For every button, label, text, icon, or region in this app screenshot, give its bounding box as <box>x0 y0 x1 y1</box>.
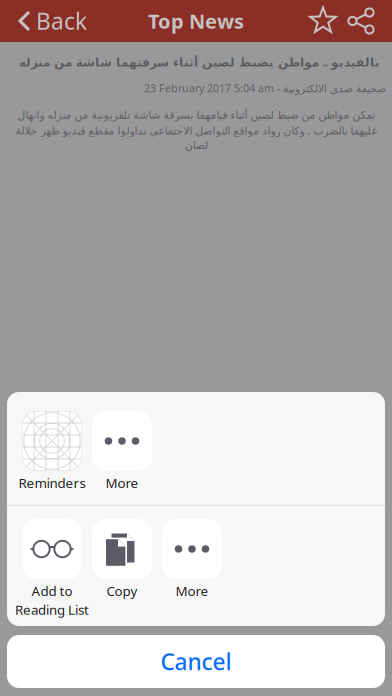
staticText: Reading List <box>15 601 89 618</box>
button[interactable]: Copy <box>87 519 157 626</box>
button[interactable]: More <box>87 411 157 505</box>
staticText: Reminders <box>18 474 85 492</box>
staticText: Top News <box>148 8 244 34</box>
button[interactable]: Share <box>347 7 375 35</box>
staticText: Copy <box>106 582 137 600</box>
staticText: 23 February 2017 5:04 am - صحيفة صدى الا… <box>144 81 386 95</box>
button[interactable]: Reminders <box>17 411 87 505</box>
button[interactable]: Back <box>0 6 87 36</box>
staticText: لصان <box>184 139 207 151</box>
staticText: Cancel <box>160 646 231 676</box>
staticText: More <box>105 474 138 492</box>
staticText: More <box>175 582 208 600</box>
button[interactable]: More <box>157 519 227 626</box>
button[interactable]: Add to <box>17 519 87 626</box>
staticText: عليهما بالضرب . وكان رواد مواقع التواصل … <box>15 123 377 137</box>
staticText: تمكن مواطن من ضبط لصين أثناء قيامهما بسر… <box>17 109 375 121</box>
button[interactable]: Favourite <box>309 7 337 34</box>
button[interactable]: Cancel <box>7 635 385 688</box>
staticText: Add to <box>31 582 72 600</box>
staticText: بالفيديو .. مواطن يضبط لصين أثناء سرقتهم… <box>18 54 379 70</box>
staticText: Back <box>36 6 87 36</box>
